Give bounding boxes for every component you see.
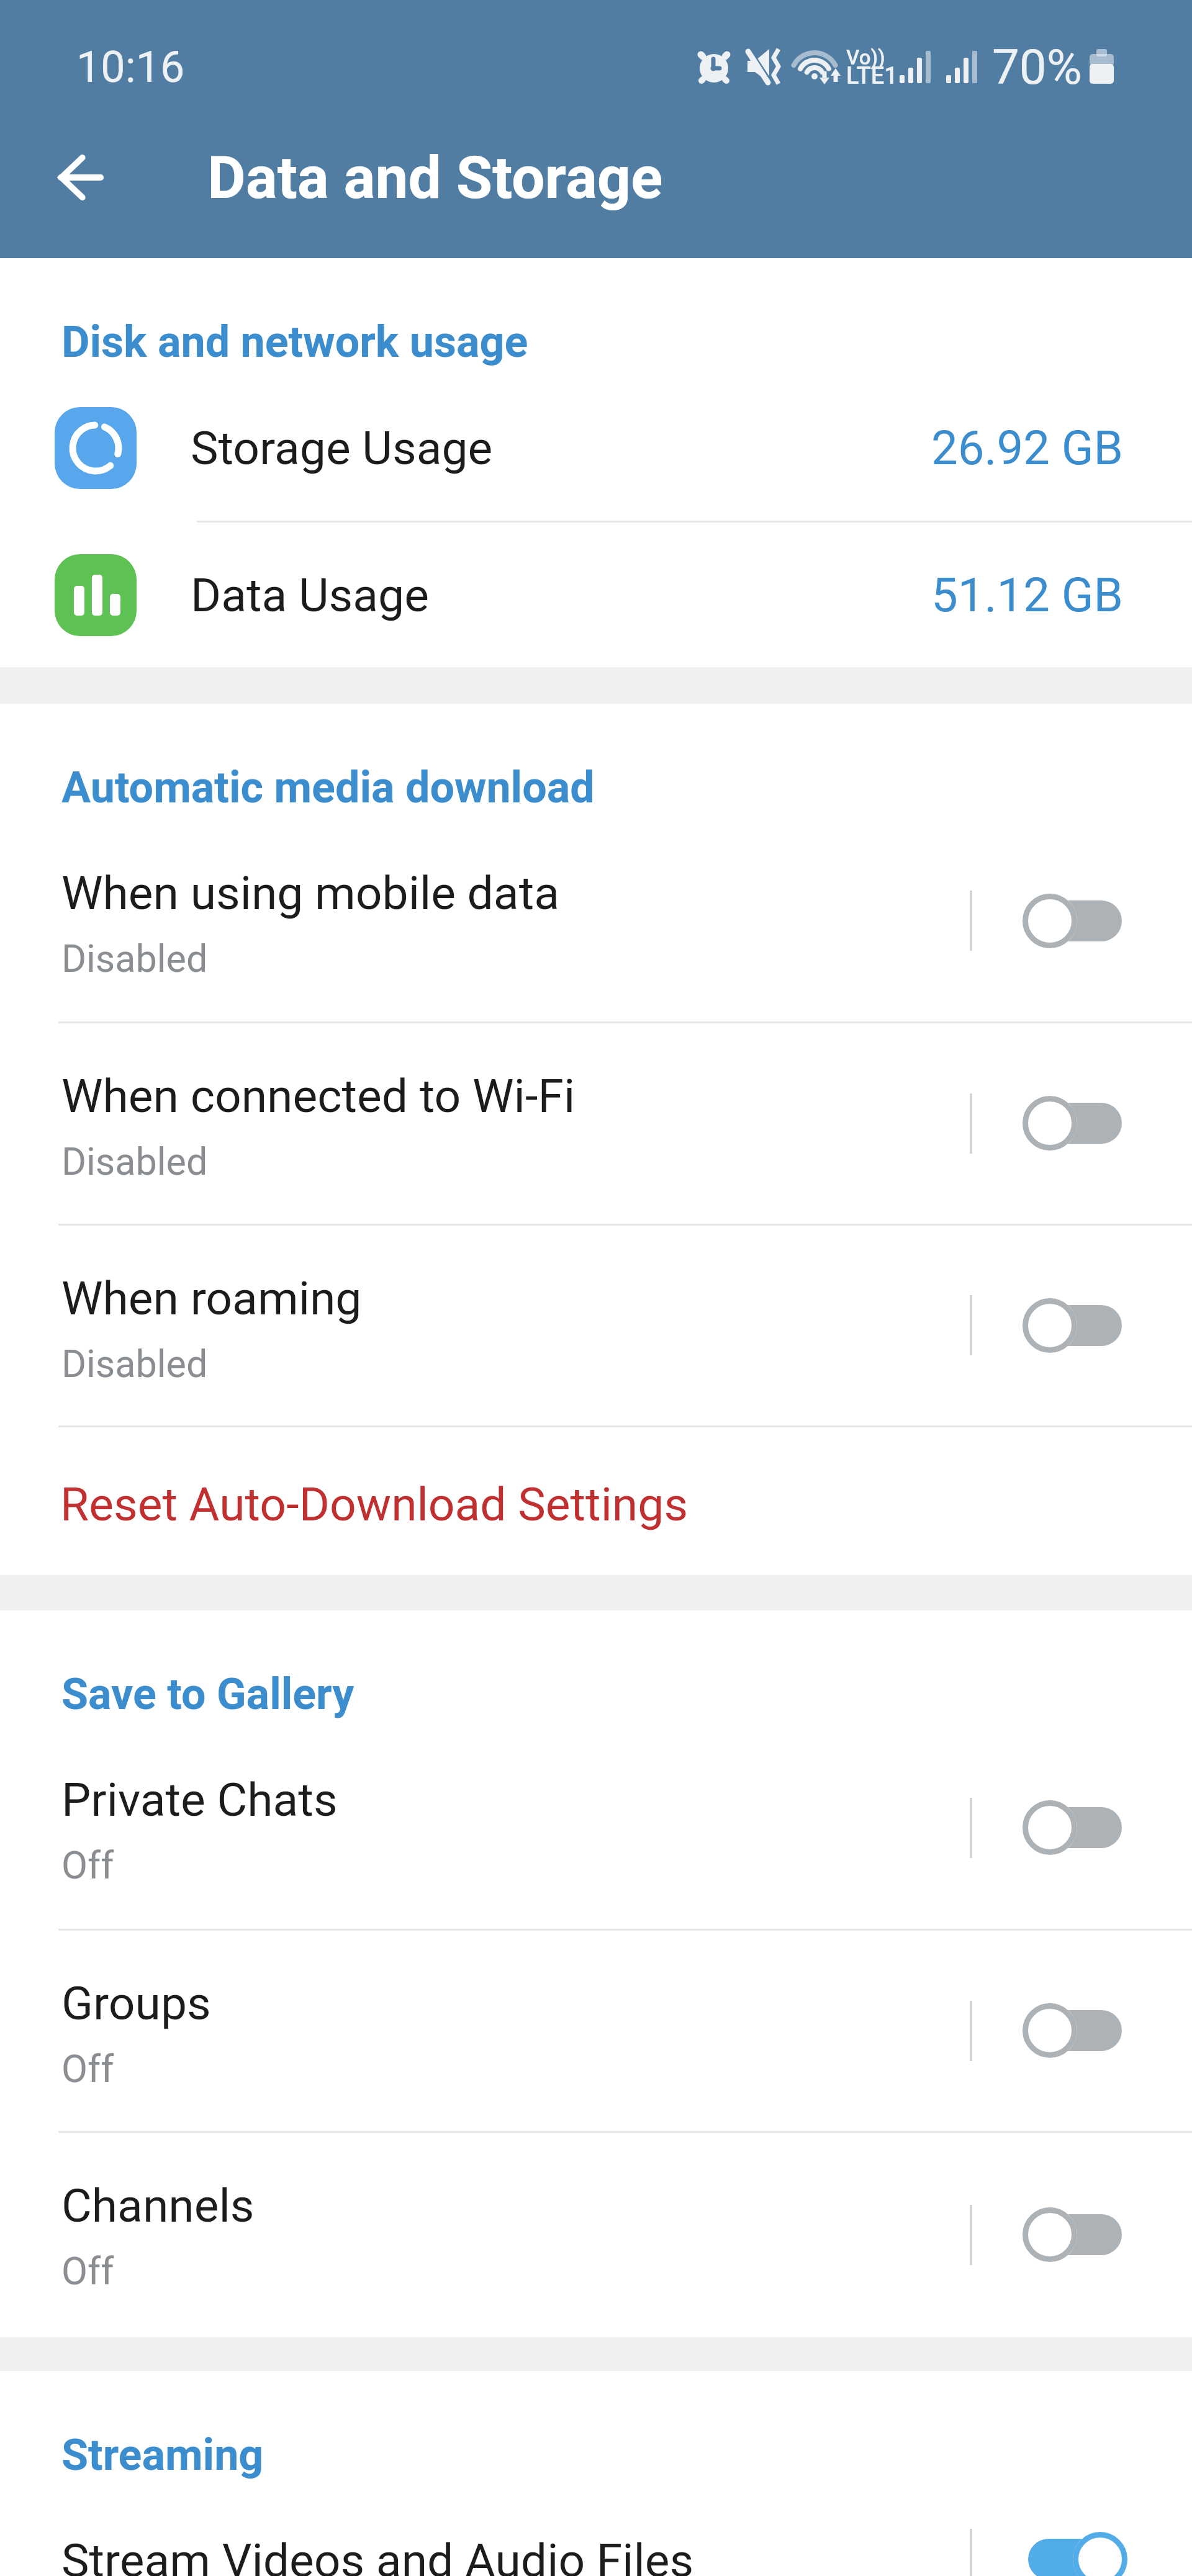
staticText: When roaming [61,1271,362,1326]
button[interactable]: When roaming [1000,1295,1161,1357]
button[interactable]: Channels [1000,2204,1161,2266]
staticText: Stream Videos and Audio Files [61,2533,694,2576]
staticText: Disk and network usage [61,316,528,367]
staticText: Disabled [61,936,208,981]
button[interactable]: When connected to Wi-Fi [0,1023,1192,1224]
staticText: When using mobile data [61,866,560,920]
staticText: Data Usage [191,568,931,622]
staticText: Vo)) [846,45,885,70]
staticText: Disabled [61,1139,208,1183]
button[interactable]: Groups [1000,1999,1161,2062]
staticText: When connected to Wi-Fi [61,1069,576,1123]
button[interactable]: When connected to Wi-Fi [1000,1092,1161,1154]
staticText: Off [61,2249,114,2293]
staticText: Off [61,1843,114,1887]
button[interactable]: Private Chats [1000,1797,1161,1859]
staticText: Storage Usage [191,421,931,475]
staticText: Data and Storage [207,143,663,212]
button[interactable]: When using mobile data [0,820,1192,1021]
button[interactable]: Storage Usage [0,375,1192,521]
button[interactable]: Data Usage [0,523,1192,667]
staticText: Off [61,2047,114,2091]
button[interactable]: Stream Videos and Audio Files [0,2488,1192,2576]
button[interactable]: Private Chats [0,1727,1192,1929]
staticText: Groups [61,1976,211,2031]
button[interactable]: Channels [0,2133,1192,2337]
button[interactable]: Stream Videos and Audio Files [1000,2528,1161,2576]
button[interactable]: Groups [0,1931,1192,2131]
staticText: 51.12 GB [931,567,1123,622]
staticText: 70% [992,39,1082,96]
staticText: LTE1 [846,62,898,90]
staticText: Channels [61,2178,255,2233]
staticText: Disabled [61,1342,208,1386]
staticText: Private Chats [61,1772,338,1827]
staticText: Streaming [61,2430,264,2480]
staticText: 26.92 GB [931,420,1123,475]
button[interactable]: When using mobile data [1000,890,1161,952]
button[interactable]: When roaming [0,1226,1192,1425]
staticText: 10:16 [76,42,185,92]
button[interactable]: Back [9,106,152,249]
button[interactable]: Reset Auto-Download Settings [0,1427,1192,1575]
staticText: Save to Gallery [61,1669,354,1720]
staticText: Automatic media download [61,762,595,813]
staticText: Reset Auto-Download Settings [60,1477,689,1532]
